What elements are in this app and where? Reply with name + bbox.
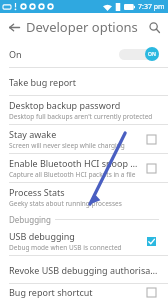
staticText: On <box>9 48 22 60</box>
button[interactable]: USB debugging <box>0 227 168 255</box>
staticText: Developer options <box>26 18 138 36</box>
button[interactable]: Back <box>5 18 23 36</box>
staticText: Bug report shortcut <box>9 286 143 298</box>
staticText: Desktop full backups aren't currently pr… <box>9 112 153 121</box>
staticText: ON <box>148 51 156 58</box>
staticText: 7:37 pm <box>138 2 165 12</box>
button[interactable]: Unchecked <box>143 131 159 147</box>
staticText: Revoke USB debugging authorisations <box>9 264 159 276</box>
button[interactable]: Bug report shortcut <box>0 284 168 300</box>
button[interactable]: Take bug report <box>0 68 168 95</box>
staticText: Desktop backup password <box>9 99 121 111</box>
button[interactable]: Stay awake <box>0 125 168 153</box>
button[interactable]: Enable Bluetooth HCI snoop log <box>0 154 168 182</box>
button[interactable]: Revoke USB debugging authorisations <box>0 256 168 283</box>
button[interactable]: On <box>0 41 168 67</box>
staticText: Debug mode when USB is connected <box>9 243 122 252</box>
button[interactable]: Unchecked <box>143 160 159 176</box>
button[interactable]: Process Stats <box>0 183 168 211</box>
staticText: Debugging <box>9 214 51 225</box>
staticText: Enable Bluetooth HCI snoop log <box>9 157 139 169</box>
button[interactable]: Search <box>145 18 163 36</box>
staticText: Process Stats <box>9 186 65 198</box>
button[interactable]: Desktop backup password <box>0 96 168 124</box>
staticText: USB debugging <box>9 230 75 242</box>
staticText: Take bug report <box>9 76 159 88</box>
staticText: Screen will never sleep while charging <box>9 141 125 150</box>
staticText: Geeky stats about running processes <box>9 199 122 208</box>
button[interactable]: Checked <box>143 233 159 249</box>
button[interactable]: Unchecked <box>143 284 159 300</box>
staticText: Stay awake <box>9 128 57 140</box>
staticText: Capture all Bluetooth HCI packets in a f… <box>9 170 136 179</box>
